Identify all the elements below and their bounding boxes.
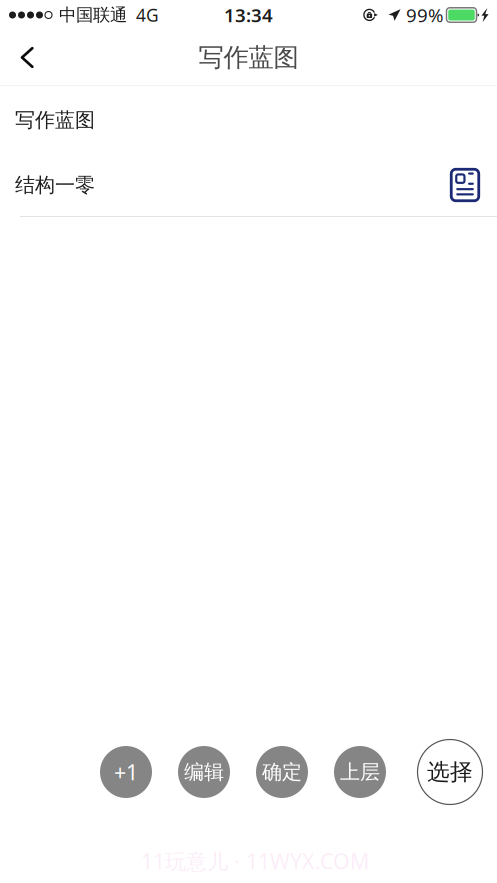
staticText: 4G [136, 3, 159, 26]
staticText: 11玩意儿 · 11WYX.COM [141, 847, 369, 875]
staticText: 结构一零 [15, 173, 95, 197]
staticText: 写作蓝图 [198, 42, 298, 73]
button[interactable]: 结构一零 [0, 154, 446, 216]
button[interactable]: 确定 [256, 746, 308, 798]
button[interactable]: 打开文档 [446, 154, 484, 216]
staticText: 选择 [427, 758, 473, 786]
staticText: 13:34 [224, 3, 273, 27]
staticText: 编辑 [184, 760, 224, 784]
button[interactable]: Back [3, 32, 51, 82]
staticText: 上层 [340, 760, 380, 784]
staticText: 写作蓝图 [15, 108, 95, 132]
button[interactable]: 上层 [334, 746, 386, 798]
button[interactable]: 选择 [417, 739, 483, 805]
staticText: 中国联通 [59, 4, 127, 26]
button[interactable]: 编辑 [178, 746, 230, 798]
button[interactable]: +1 [100, 746, 152, 798]
staticText: +1 [114, 758, 138, 786]
staticText: 99% [406, 3, 444, 27]
staticText: 确定 [262, 760, 302, 784]
